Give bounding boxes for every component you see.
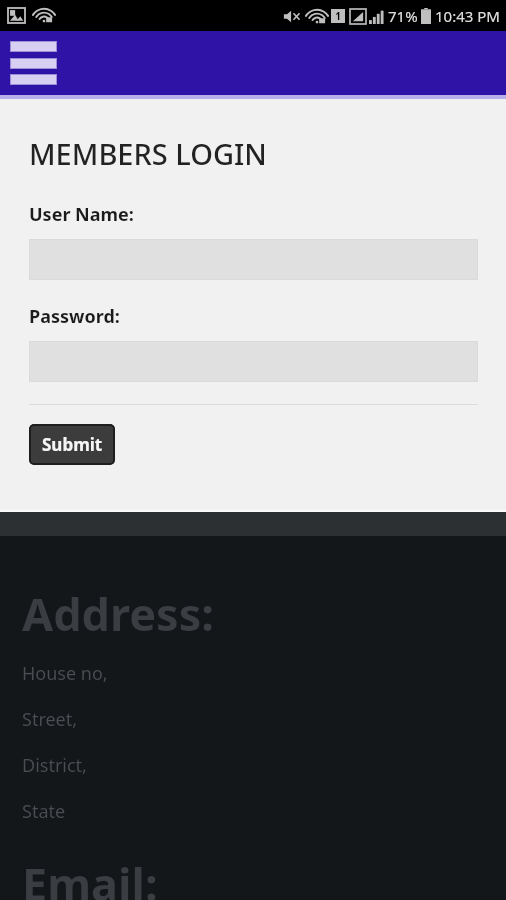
staticText: 71%: [388, 6, 418, 26]
staticText: Street,: [22, 707, 78, 732]
staticText: Email:: [22, 853, 158, 900]
staticText: Submit: [42, 433, 103, 456]
staticText: House no,: [22, 661, 108, 686]
staticText: Password:: [29, 304, 120, 329]
staticText: MEMBERS LOGIN: [29, 134, 267, 173]
staticText: State: [22, 799, 66, 824]
staticText: District,: [22, 753, 87, 778]
staticText: 1: [335, 9, 341, 23]
staticText: Address:: [22, 583, 214, 644]
staticText: 10:43 PM: [435, 6, 500, 26]
button[interactable]: Open navigation menu: [10, 41, 57, 85]
staticText: User Name:: [29, 202, 134, 227]
button[interactable]: Submit: [29, 424, 115, 465]
